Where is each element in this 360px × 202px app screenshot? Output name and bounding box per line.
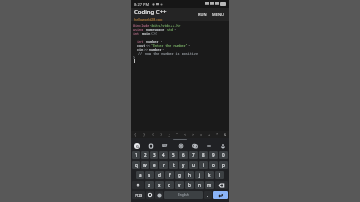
staticText: 8:27 PM — [134, 2, 150, 7]
button[interactable]: i — [199, 161, 208, 169]
button[interactable]: = — [197, 131, 205, 138]
button[interactable]: MENU — [210, 11, 226, 18]
staticText: GIF — [162, 144, 168, 148]
button[interactable]: f — [165, 171, 174, 179]
staticText: 0 — [222, 152, 225, 158]
button[interactable]: Google — [134, 143, 140, 149]
button[interactable]: k — [205, 171, 214, 179]
button[interactable]: + — [205, 131, 213, 138]
button[interactable]: g — [175, 171, 184, 179]
button[interactable]: z — [145, 181, 154, 189]
button[interactable]: & — [221, 131, 229, 138]
staticText: now the number is positive — [143, 51, 198, 55]
staticText: cout — [133, 43, 146, 47]
button[interactable]: > — [189, 131, 197, 138]
button[interactable]: d — [155, 171, 164, 179]
button[interactable]: v — [175, 181, 184, 189]
button[interactable]: 8 — [199, 151, 208, 159]
button[interactable]: 9 — [209, 151, 218, 159]
staticText: l — [219, 172, 221, 178]
button[interactable]: e — [150, 161, 158, 169]
button[interactable]: Emoji — [146, 191, 154, 199]
button[interactable]: GIF — [161, 143, 169, 149]
staticText: } — [143, 132, 146, 137]
button[interactable]: u — [189, 161, 198, 169]
button[interactable]: " — [173, 131, 181, 138]
staticText: u — [192, 162, 195, 168]
button[interactable]: 1 — [132, 151, 140, 159]
button[interactable]: q — [132, 161, 140, 169]
button[interactable]: RUN — [196, 11, 209, 18]
staticText: cin — [133, 47, 144, 51]
staticText: c — [168, 182, 171, 188]
button[interactable]: o — [209, 161, 218, 169]
button[interactable]: { — [131, 131, 140, 138]
button[interactable]: 5 — [169, 151, 178, 159]
button[interactable]: Clipboard — [147, 142, 154, 149]
staticText: . — [207, 192, 209, 198]
button[interactable]: j — [195, 171, 204, 179]
staticText: main — [140, 31, 151, 35]
button[interactable]: More — [205, 142, 212, 149]
staticText: > — [192, 132, 195, 137]
button[interactable]: 3 — [150, 151, 158, 159]
button[interactable]: r — [159, 161, 168, 169]
staticText: 9 — [212, 152, 215, 158]
button[interactable]: s — [145, 171, 154, 179]
button[interactable]: 2 — [141, 151, 149, 159]
staticText: 8 — [202, 152, 205, 158]
staticText: <bits/stdc++.h> — [150, 23, 181, 27]
staticText: h — [188, 172, 191, 178]
button[interactable]: ; — [165, 131, 173, 138]
staticText: y — [182, 162, 185, 168]
button[interactable]: * — [213, 131, 221, 138]
button[interactable]: b — [185, 181, 194, 189]
button[interactable]: Voice — [155, 191, 163, 199]
staticText: { — [134, 132, 137, 137]
button[interactable]: ?123 — [132, 191, 145, 199]
button[interactable]: . — [204, 191, 212, 199]
staticText: v — [178, 182, 181, 188]
staticText: (){ — [151, 31, 158, 35]
button[interactable]: m — [205, 181, 214, 189]
staticText: ?123 — [135, 193, 143, 198]
staticText: b — [188, 182, 191, 188]
button[interactable]: y — [179, 161, 188, 169]
button[interactable]: x — [155, 181, 164, 189]
button[interactable]: a — [136, 171, 144, 179]
button[interactable]: 4 — [159, 151, 168, 159]
staticText: m — [207, 182, 212, 188]
button[interactable]: 6 — [179, 151, 188, 159]
button[interactable]: c — [165, 181, 174, 189]
button[interactable]: 7 — [189, 151, 198, 159]
button[interactable]: n — [195, 181, 204, 189]
button[interactable]: Voice input — [219, 142, 226, 149]
staticText: Coding C++ — [134, 8, 167, 16]
button[interactable]: Enter — [213, 191, 228, 199]
button[interactable]: 0 — [219, 151, 228, 159]
staticText: & — [224, 132, 227, 137]
staticText: RUN — [198, 12, 207, 17]
staticText: using — [133, 27, 144, 31]
staticText: w — [143, 162, 147, 168]
button[interactable]: l — [215, 171, 224, 179]
staticText: * — [216, 132, 219, 137]
button[interactable]: w — [141, 161, 149, 169]
button[interactable]: t — [169, 161, 178, 169]
button[interactable]: p — [219, 161, 228, 169]
button[interactable]: < — [181, 131, 189, 138]
button[interactable]: Shift — [132, 181, 144, 189]
staticText: 4 — [162, 152, 165, 158]
button[interactable]: Backspace — [215, 181, 228, 189]
button[interactable]: h — [185, 171, 194, 179]
button[interactable]: Space — [164, 191, 203, 199]
button[interactable]: ) — [157, 131, 165, 138]
button[interactable]: Translate — [191, 142, 198, 149]
staticText: 5 — [172, 152, 175, 158]
staticText: = — [200, 132, 203, 137]
staticText: English — [178, 193, 189, 197]
staticText: t — [173, 162, 175, 168]
button[interactable]: Settings — [177, 142, 184, 149]
button[interactable]: } — [140, 131, 149, 138]
button[interactable]: ( — [149, 131, 157, 138]
